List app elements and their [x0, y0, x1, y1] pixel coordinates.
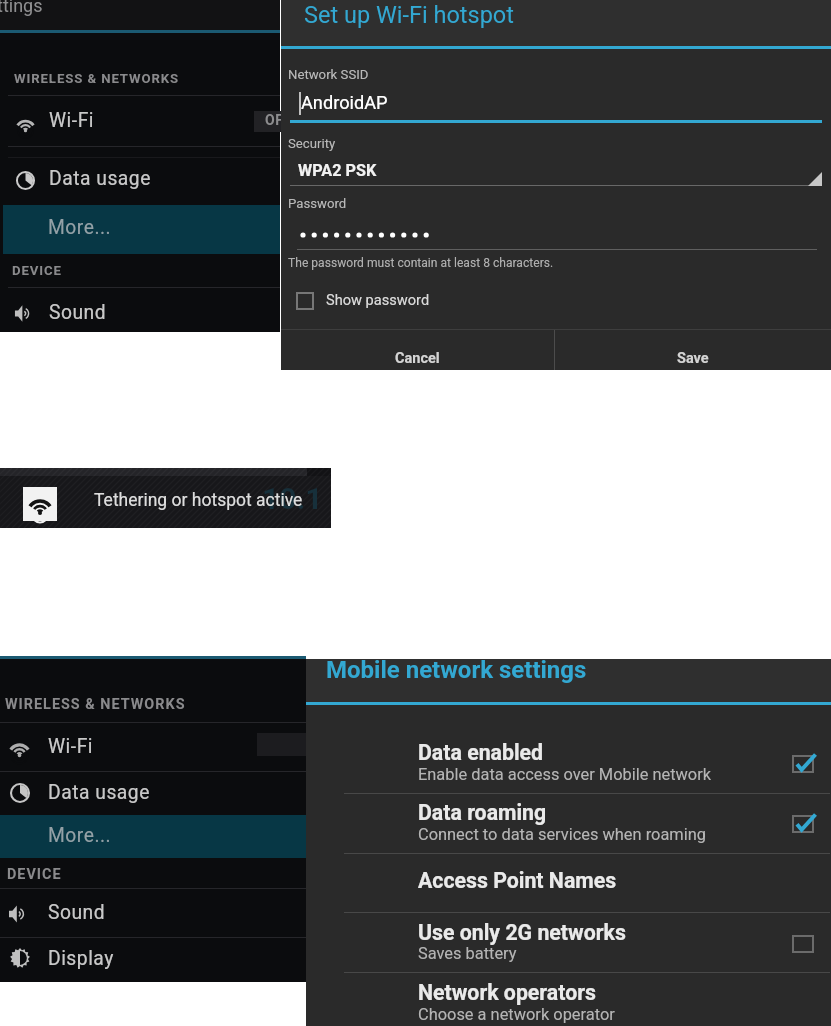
button[interactable]: Use only 2G networks checkbox: [793, 930, 819, 956]
button[interactable]: More...: [3, 205, 280, 254]
staticText: Choose a network operator: [418, 1005, 615, 1024]
button[interactable]: Sound: [0, 889, 306, 937]
staticText: Save: [677, 350, 709, 367]
staticText: Network operators: [418, 980, 596, 1005]
staticText: Password: [288, 196, 347, 211]
button[interactable]: Network operators: [306, 973, 831, 1026]
staticText: Network SSID: [288, 67, 369, 82]
staticText: Saves battery: [418, 944, 517, 963]
button[interactable]: Data usage: [0, 772, 306, 815]
staticText: Connect to data services when roaming: [418, 825, 706, 844]
staticText: Data usage: [49, 167, 151, 190]
staticText: OFF: [265, 112, 292, 128]
staticText: Data roaming: [418, 800, 547, 825]
staticText: More...: [48, 824, 112, 847]
button[interactable]: Cancel: [281, 330, 554, 370]
staticText: Wi-Fi: [48, 735, 94, 758]
staticText: Tethering or hotspot active: [94, 490, 303, 511]
staticText: WIRELESS & NETWORKS: [14, 71, 180, 86]
button[interactable]: Data enabled checkbox: [793, 750, 819, 776]
staticText: WIRELESS & NETWORKS: [5, 696, 186, 713]
staticText: Set up Wi-Fi hotspot: [304, 1, 514, 29]
button[interactable]: Display: [0, 938, 306, 982]
button[interactable]: Wi-Fi off switch: [254, 111, 294, 132]
staticText: Wi-Fi: [49, 109, 95, 132]
button[interactable]: Access Point Names: [306, 854, 831, 912]
button[interactable]: Wi-Fi: [0, 723, 306, 771]
button[interactable]: Data enabled: [306, 704, 831, 793]
staticText: Sound: [49, 301, 107, 324]
staticText: DEVICE: [7, 866, 62, 883]
staticText: Enable data access over Mobile network: [418, 765, 712, 784]
staticText: Security: [288, 136, 336, 151]
staticText: DEVICE: [12, 263, 62, 278]
button[interactable]: Save: [555, 330, 831, 370]
staticText: Display: [48, 947, 114, 970]
staticText: ttings: [0, 0, 43, 16]
staticText: 10.1: [262, 481, 323, 516]
button[interactable]: More...: [0, 815, 306, 858]
button[interactable]: Wi-Fi: [0, 101, 280, 145]
button[interactable]: Data roaming: [306, 794, 831, 853]
staticText: Mobile network settings: [326, 656, 587, 684]
staticText: Access Point Names: [418, 868, 617, 893]
button[interactable]: Data roaming checkbox: [793, 810, 819, 836]
button[interactable]: Data usage: [0, 160, 280, 202]
staticText: Data enabled: [418, 740, 544, 765]
button[interactable]: Show password: [281, 284, 601, 318]
staticText: WPA2 PSK: [298, 161, 377, 180]
staticText: The password must contain at least 8 cha…: [288, 256, 554, 270]
staticText: AndroidAP: [301, 92, 388, 113]
button[interactable]: Use only 2G networks: [306, 913, 831, 972]
staticText: Show password: [326, 291, 430, 308]
staticText: Data usage: [48, 781, 150, 804]
staticText: Sound: [48, 901, 106, 924]
staticText: More...: [48, 216, 112, 239]
staticText: Cancel: [395, 350, 440, 367]
button[interactable]: Sound: [0, 294, 280, 332]
staticText: Use only 2G networks: [418, 920, 626, 945]
